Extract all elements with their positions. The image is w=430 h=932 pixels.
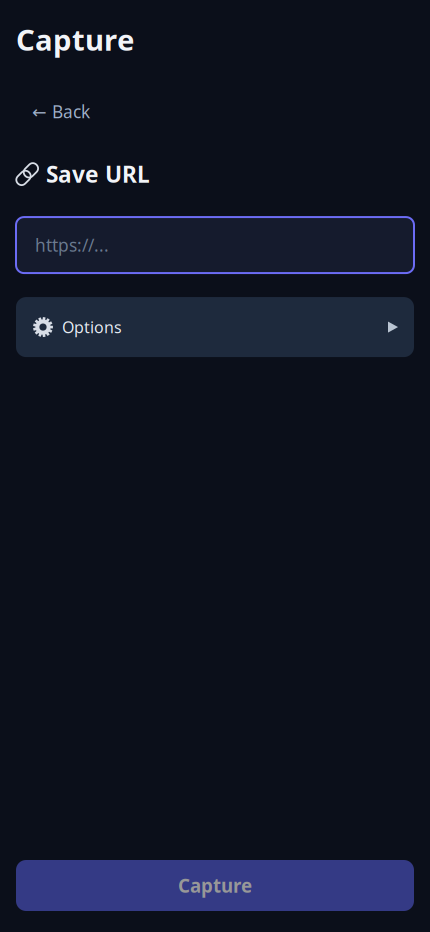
staticText: Options xyxy=(62,316,122,338)
staticText: Save URL xyxy=(46,159,150,189)
staticText: Capture xyxy=(178,873,252,898)
staticText: https://... xyxy=(35,234,109,257)
button[interactable]: URL, https://... xyxy=(0,189,430,273)
button[interactable]: ← Back xyxy=(0,59,90,123)
button[interactable]: Options xyxy=(0,273,430,357)
button[interactable]: Capture xyxy=(0,860,430,932)
staticText: ← Back xyxy=(32,100,90,123)
staticText: Capture xyxy=(16,20,135,59)
